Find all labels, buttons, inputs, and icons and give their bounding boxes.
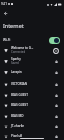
staticText: BIAS GUEST bbox=[11, 93, 28, 97]
staticText: Wi-Fi bbox=[3, 38, 11, 42]
button[interactable]: Wi-Fi bbox=[0, 35, 64, 45]
staticText: Saved bbox=[11, 61, 19, 65]
button[interactable]: Welcome to G... bbox=[0, 44, 64, 56]
button[interactable]: JT-charlie bbox=[0, 121, 64, 131]
staticText: Pixel u8 bbox=[11, 134, 23, 138]
button[interactable]: BIAS GUEST bbox=[0, 100, 64, 110]
button[interactable]: Network details bbox=[51, 46, 60, 55]
button[interactable]: VICTORIAN bbox=[0, 79, 64, 89]
button[interactable]: Larapin bbox=[0, 67, 64, 77]
staticText: VICTORIAN bbox=[11, 82, 27, 86]
button[interactable]: Pixel u8 bbox=[0, 131, 64, 140]
staticText: JT-charlie bbox=[11, 124, 24, 128]
button[interactable]: Back bbox=[0, 8, 10, 18]
staticText: 9:21 bbox=[1, 2, 7, 6]
staticText: Welcome to G... bbox=[11, 46, 34, 50]
button[interactable]: Sparky bbox=[0, 55, 64, 67]
staticText: Larapin bbox=[11, 70, 22, 74]
button[interactable]: BIAS GUEST bbox=[0, 90, 64, 100]
staticText: Sparky bbox=[11, 57, 21, 61]
staticText: Internet bbox=[3, 22, 24, 29]
staticText: Connected bbox=[11, 50, 26, 54]
staticText: BIAS GUEST bbox=[11, 103, 28, 107]
staticText: BIAS MD bbox=[11, 114, 24, 118]
button[interactable]: BIAS MD bbox=[0, 111, 64, 121]
